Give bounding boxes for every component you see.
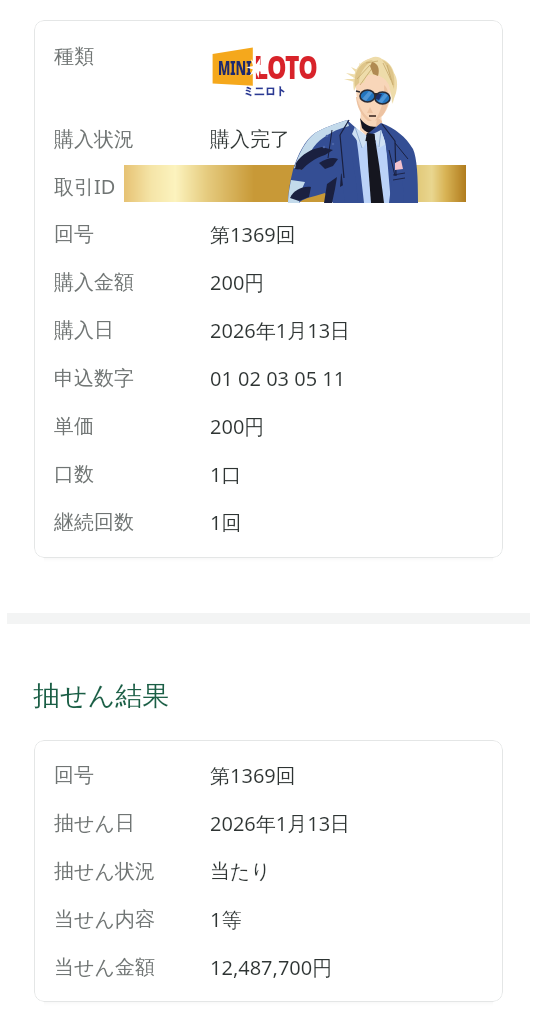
staticText: 口数: [54, 462, 94, 487]
staticText: LOTO: [254, 44, 317, 88]
staticText: 申込数字: [54, 366, 134, 391]
staticText: 購入日: [54, 318, 114, 343]
staticText: 購入金額: [54, 270, 134, 295]
staticText: 1回: [210, 509, 242, 536]
staticText: 第1369回: [210, 221, 296, 248]
staticText: MINI: [218, 55, 252, 81]
staticText: 単価: [54, 414, 94, 439]
staticText: 200円: [210, 269, 265, 296]
staticText: 購入完了: [210, 127, 290, 152]
staticText: 当せん内容: [54, 907, 155, 932]
staticText: 当たり: [210, 859, 271, 884]
button[interactable]: 種類: [34, 20, 503, 558]
staticText: 1等: [210, 906, 242, 933]
staticText: 抽せん結果: [33, 679, 170, 713]
staticText: 取引ID: [54, 173, 116, 200]
staticText: 購入状況: [54, 127, 134, 152]
staticText: 当せん金額: [54, 955, 155, 980]
staticText: 回号: [54, 222, 94, 247]
staticText: 2026年1月13日: [210, 317, 351, 344]
staticText: 第1369回: [210, 762, 296, 789]
staticText: 01 02 03 05 11: [210, 365, 346, 392]
staticText: 抽せん日: [54, 811, 135, 836]
staticText: 2026年1月13日: [210, 810, 351, 837]
staticText: 12,487,700円: [210, 954, 333, 981]
button[interactable]: 回号: [34, 740, 503, 1002]
staticText: ミニロト: [243, 84, 287, 98]
staticText: 1口: [210, 461, 242, 488]
staticText: 継続回数: [54, 510, 134, 535]
staticText: 200円: [210, 413, 265, 440]
staticText: 回号: [54, 763, 94, 788]
staticText: 抽せん状況: [54, 859, 155, 884]
staticText: 種類: [54, 44, 94, 69]
